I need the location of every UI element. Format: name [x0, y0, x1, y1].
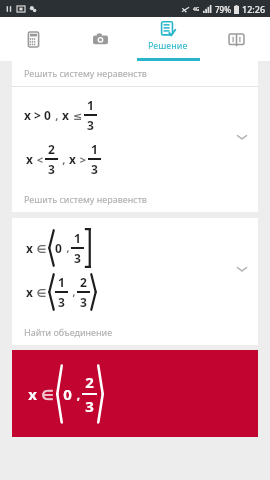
staticText: 2	[85, 372, 94, 392]
button[interactable]: x	[12, 350, 258, 437]
staticText: x	[67, 151, 78, 167]
staticText: x	[24, 284, 35, 300]
staticText: Решение	[148, 39, 188, 51]
staticText: 2	[80, 274, 87, 290]
staticText: 3	[80, 294, 87, 310]
staticText: 3	[91, 161, 98, 177]
staticText: 3	[74, 250, 81, 266]
staticText: Решить систему неравенств	[24, 193, 147, 205]
staticText: 3	[48, 161, 55, 177]
staticText: 3	[85, 396, 94, 416]
staticText: Найти объединение	[24, 326, 113, 338]
staticText: 1	[58, 274, 65, 290]
staticText: x	[60, 107, 71, 123]
staticText: ∈	[35, 241, 48, 256]
staticText: x	[24, 151, 35, 167]
button[interactable]: x	[12, 218, 258, 320]
staticText: 0	[55, 240, 62, 256]
staticText: x	[24, 240, 35, 256]
staticText: ∈	[35, 285, 48, 300]
staticText: ,	[62, 241, 71, 255]
staticText: x	[26, 384, 39, 404]
staticText: ≤	[71, 108, 84, 123]
staticText: 79%	[215, 4, 231, 15]
staticText: ,	[72, 386, 82, 402]
staticText: 12:26	[242, 3, 266, 15]
button[interactable]: Calculator	[0, 17, 67, 61]
button[interactable]: Dictionary	[202, 17, 270, 61]
staticText: ,	[51, 108, 60, 123]
staticText: x > 0	[24, 107, 51, 123]
staticText: <	[35, 152, 45, 167]
staticText: >	[78, 152, 88, 167]
staticText: 3	[87, 117, 94, 133]
staticText: 4G	[193, 6, 200, 13]
staticText: ,	[68, 285, 77, 299]
staticText: Решить систему неравенств	[24, 67, 147, 79]
staticText: 3	[58, 294, 65, 310]
button[interactable]: Camera	[67, 17, 134, 61]
staticText: 0	[63, 384, 72, 404]
staticText: ∈	[39, 385, 56, 404]
staticText: 1	[91, 141, 98, 157]
button[interactable]: Решение	[134, 17, 202, 61]
staticText: ,	[58, 152, 67, 167]
staticText: 1	[87, 97, 94, 113]
button[interactable]: x > 0	[12, 87, 258, 187]
staticText: 1	[74, 230, 81, 246]
staticText: 2	[48, 141, 55, 157]
